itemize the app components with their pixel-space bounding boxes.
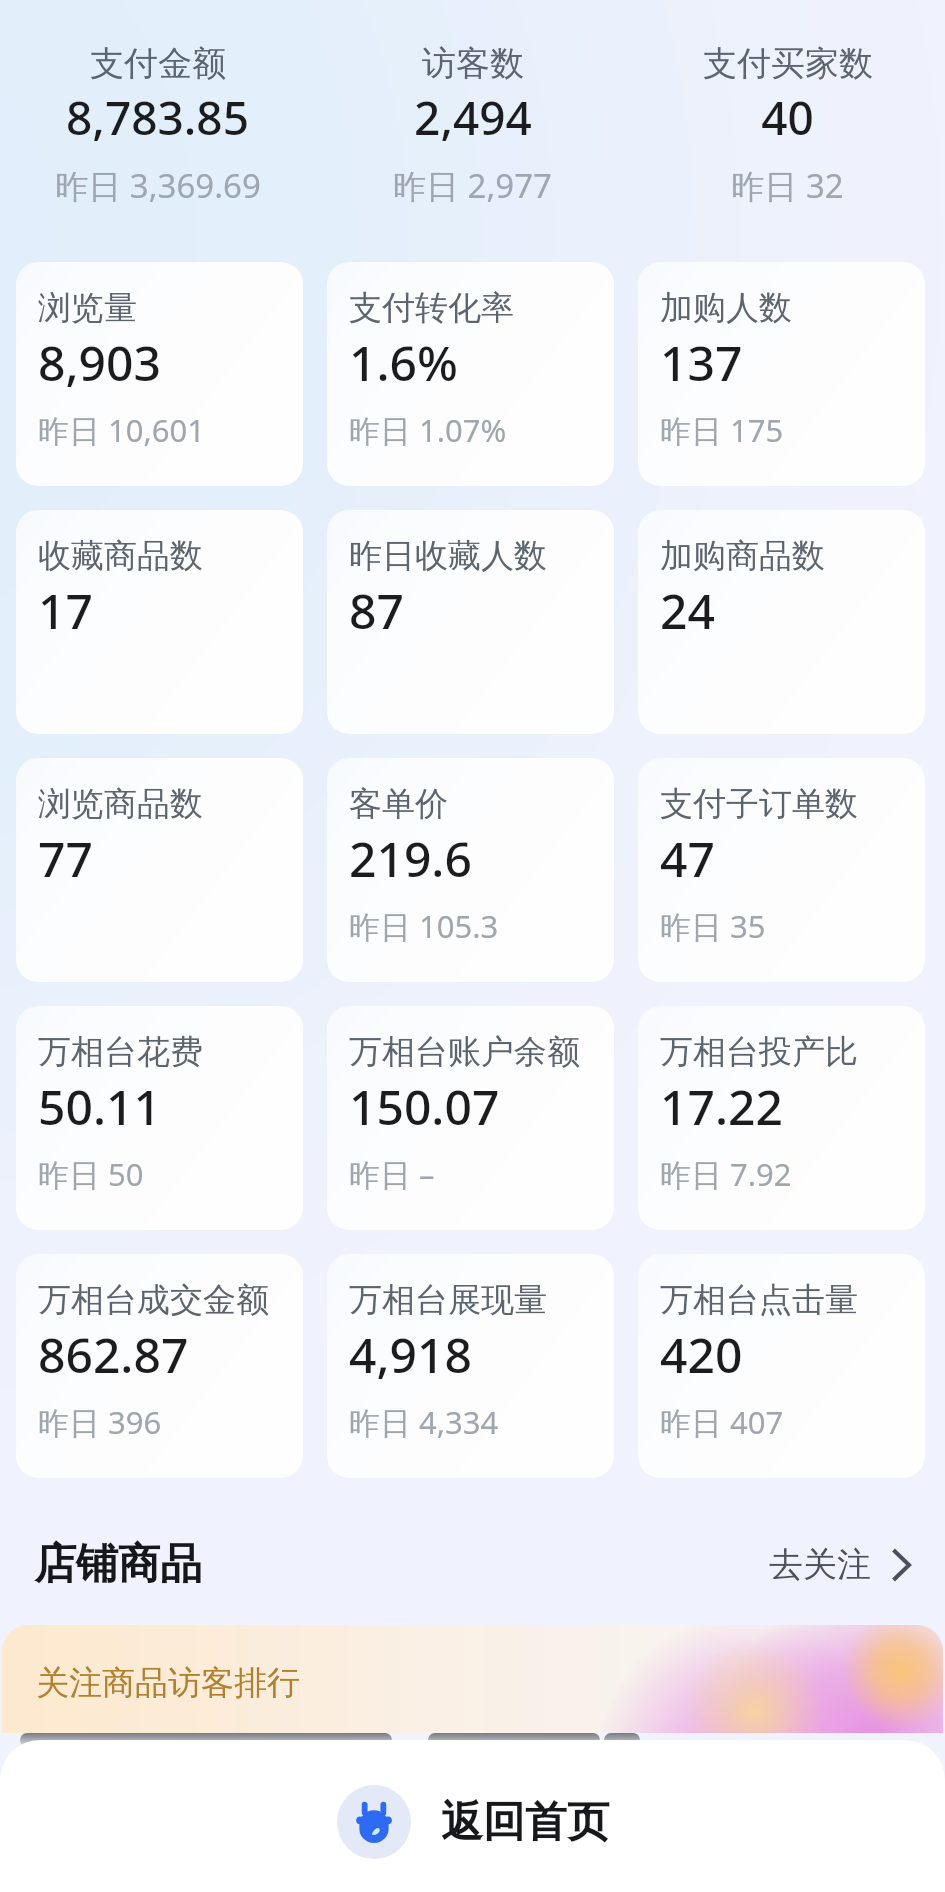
staticText: 万相台账户余额 — [349, 1031, 580, 1073]
staticText: 万相台花费 — [38, 1031, 203, 1073]
staticText: 昨日 105.3 — [349, 905, 499, 947]
button[interactable]: 昨日收藏人数 — [327, 510, 614, 734]
button[interactable]: 收藏商品数 — [16, 510, 303, 734]
button[interactable]: 返回首页 — [337, 1785, 609, 1859]
staticText: 昨日 7.92 — [660, 1153, 792, 1195]
button[interactable]: 客单价 — [327, 758, 614, 982]
staticText: 862.87 — [38, 1322, 189, 1387]
button[interactable]: 支付金额 — [0, 42, 315, 208]
staticText: 8,783.85 — [66, 86, 249, 149]
button[interactable]: 支付转化率 — [327, 262, 614, 486]
button[interactable]: 关注商品访客排行 — [2, 1625, 943, 1733]
staticText: 420 — [660, 1322, 743, 1387]
button[interactable]: 万相台展现量 — [327, 1254, 614, 1478]
staticText: 137 — [660, 330, 743, 395]
staticText: 关注商品访客排行 — [36, 1662, 300, 1704]
staticText: 昨日 407 — [660, 1401, 784, 1443]
staticText: 访客数 — [422, 42, 524, 85]
staticText: 昨日 175 — [660, 409, 784, 451]
staticText: 219.6 — [349, 826, 472, 891]
staticText: 昨日 2,977 — [393, 163, 552, 208]
staticText: 17.22 — [660, 1074, 783, 1139]
staticText: 昨日 50 — [38, 1153, 144, 1195]
staticText: 加购人数 — [660, 287, 792, 329]
staticText: 昨日 – — [349, 1153, 435, 1195]
button[interactable]: 加购商品数 — [638, 510, 925, 734]
button[interactable]: 浏览量 — [16, 262, 303, 486]
button[interactable]: 浏览商品数 — [16, 758, 303, 982]
button[interactable]: 万相台成交金额 — [16, 1254, 303, 1478]
staticText: 昨日 396 — [38, 1401, 162, 1443]
staticText: 支付买家数 — [703, 42, 873, 85]
staticText: 150.07 — [349, 1074, 500, 1139]
staticText: 8,903 — [38, 330, 161, 395]
button[interactable]: 去关注 — [769, 1543, 913, 1586]
staticText: 昨日 3,369.69 — [55, 163, 261, 208]
staticText: 昨日 35 — [660, 905, 766, 947]
staticText: 4,918 — [349, 1322, 472, 1387]
staticText: 返回首页 — [441, 1796, 609, 1849]
button[interactable]: 加购人数 — [638, 262, 925, 486]
staticText: 昨日 32 — [731, 163, 844, 208]
staticText: 40 — [761, 86, 814, 149]
staticText: 昨日 1.07% — [349, 409, 507, 451]
other: 去关注 — [891, 1548, 913, 1582]
staticText: 支付子订单数 — [660, 783, 858, 825]
staticText: 万相台成交金额 — [38, 1279, 269, 1321]
button[interactable]: 支付子订单数 — [638, 758, 925, 982]
staticText: 1.6% — [349, 330, 458, 395]
other: 返回首页 — [337, 1785, 411, 1859]
button[interactable]: 万相台投产比 — [638, 1006, 925, 1230]
staticText: 昨日 10,601 — [38, 409, 206, 451]
staticText: 77 — [38, 826, 93, 891]
staticText: 万相台展现量 — [349, 1279, 547, 1321]
button[interactable]: 万相台点击量 — [638, 1254, 925, 1478]
staticText: 万相台投产比 — [660, 1031, 858, 1073]
staticText: 2,494 — [414, 86, 532, 149]
staticText: 昨日 4,334 — [349, 1401, 499, 1443]
staticText: 17 — [38, 578, 93, 643]
staticText: 支付转化率 — [349, 287, 514, 329]
staticText: 浏览商品数 — [38, 783, 203, 825]
staticText: 收藏商品数 — [38, 535, 203, 577]
staticText: 87 — [349, 578, 404, 643]
staticText: 昨日收藏人数 — [349, 535, 547, 577]
staticText: 24 — [660, 578, 715, 643]
staticText: 万相台点击量 — [660, 1279, 858, 1321]
staticText: 支付金额 — [90, 42, 226, 85]
staticText: 47 — [660, 826, 715, 891]
staticText: 浏览量 — [38, 287, 137, 329]
staticText: 客单价 — [349, 783, 448, 825]
button[interactable]: 支付买家数 — [630, 42, 945, 208]
staticText: 去关注 — [769, 1543, 871, 1586]
button[interactable]: 访客数 — [315, 42, 630, 208]
button[interactable]: 万相台花费 — [16, 1006, 303, 1230]
staticText: 店铺商品 — [34, 1538, 202, 1591]
button[interactable]: 万相台账户余额 — [327, 1006, 614, 1230]
staticText: 加购商品数 — [660, 535, 825, 577]
staticText: 50.11 — [38, 1074, 161, 1139]
